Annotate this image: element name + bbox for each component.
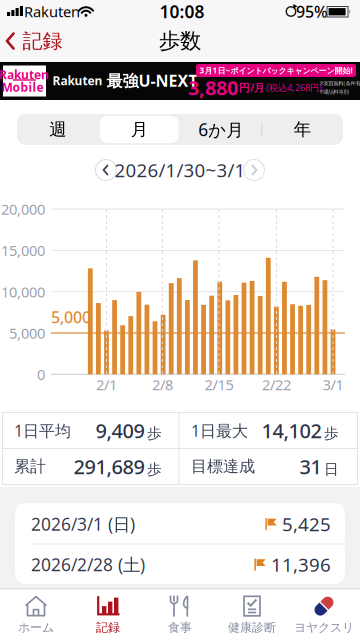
button[interactable]: Rakuten Mobile 最強U-NEXT 広告 — [0, 62, 360, 100]
staticText: Mobile — [1, 79, 43, 95]
staticText: 歩 — [147, 460, 162, 478]
staticText: (税込4,268円) — [266, 81, 322, 94]
staticText: 月 — [131, 119, 148, 140]
button[interactable]: 月 — [100, 116, 178, 143]
button[interactable]: 2026/2/28 (土) — [15, 544, 345, 584]
staticText: 11,396 — [271, 552, 331, 577]
staticText: 最強U-NEXT — [106, 70, 197, 91]
staticText: Rakuten — [24, 2, 80, 21]
staticText: 14,102 — [261, 417, 321, 444]
button[interactable]: 前の期間 — [95, 159, 117, 181]
staticText: 2026/2/28 (土) — [31, 553, 145, 576]
staticText: ※実質無料(条件有) — [319, 80, 360, 87]
staticText: 円/月 — [239, 80, 265, 95]
staticText: 2/1 — [96, 375, 117, 394]
button[interactable]: ヨヤクスリ — [288, 590, 360, 640]
button[interactable]: 記録 — [72, 590, 144, 640]
staticText: 0 — [37, 365, 45, 384]
button[interactable]: 次の期間 — [243, 159, 265, 181]
staticText: 15,000 — [1, 241, 45, 260]
staticText: ホーム — [18, 620, 54, 635]
staticText: 2026/1/30~3/1 — [114, 158, 245, 182]
staticText: 年 — [294, 119, 311, 140]
button[interactable]: 年 — [263, 116, 341, 143]
staticText: 歩数 — [159, 28, 201, 54]
staticText: 10:08 — [159, 0, 204, 23]
button[interactable]: 6か月 — [182, 116, 260, 143]
staticText: 食事 — [168, 620, 192, 635]
staticText: 週 — [49, 119, 66, 140]
staticText: 31 — [299, 453, 321, 480]
staticText: 10,000 — [1, 282, 45, 301]
staticText: 歩 — [324, 424, 339, 442]
staticText: Rakuten — [0, 66, 49, 82]
staticText: 歩 — [147, 424, 162, 442]
staticText: 3月1日~ポイントバックキャンペーン開始! — [199, 65, 352, 76]
staticText: 記録 — [96, 620, 120, 635]
staticText: 日 — [324, 460, 339, 478]
staticText: 5,000 — [51, 306, 91, 328]
staticText: ヨヤクスリ — [294, 620, 354, 635]
staticText: Rakuten — [52, 72, 102, 88]
button[interactable]: 2026/3/1 (日) — [15, 504, 345, 544]
staticText: 95% — [296, 1, 328, 22]
staticText: 2/8 — [152, 375, 173, 394]
staticText: ※通話料等別 — [319, 88, 348, 95]
staticText: 2/22 — [262, 375, 291, 394]
staticText: 5,000 — [9, 323, 45, 343]
staticText: 20,000 — [1, 199, 45, 219]
button[interactable]: ホーム — [0, 590, 72, 640]
staticText: 累計 — [14, 457, 46, 476]
staticText: 1日最大 — [191, 420, 248, 441]
button[interactable]: 戻る 記録 — [3, 24, 65, 58]
staticText: 2/15 — [204, 375, 233, 394]
button[interactable]: 週 — [19, 116, 97, 143]
staticText: 5,425 — [282, 512, 331, 536]
staticText: 目標達成 — [191, 457, 255, 476]
staticText: 6か月 — [198, 118, 243, 141]
staticText: 健康診断 — [228, 620, 276, 635]
staticText: 3/1 — [322, 375, 343, 394]
staticText: 2026/3/1 (日) — [31, 512, 135, 535]
staticText: 3,880 — [188, 74, 238, 101]
staticText: 9,409 — [95, 417, 144, 444]
staticText: 1日平均 — [14, 420, 71, 441]
button[interactable]: 食事 — [144, 590, 216, 640]
staticText: 記録 — [22, 29, 62, 53]
button[interactable]: 健康診断 — [216, 590, 288, 640]
staticText: 291,689 — [73, 453, 144, 480]
